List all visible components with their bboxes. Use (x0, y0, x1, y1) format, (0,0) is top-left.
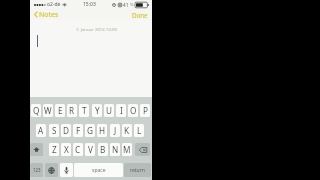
button[interactable]: Z (49, 143, 59, 156)
button[interactable]: Shift (30, 143, 43, 156)
button[interactable]: T (79, 104, 89, 117)
button[interactable]: O (128, 104, 138, 117)
staticText: N (112, 144, 119, 155)
staticText: B (100, 144, 106, 155)
button[interactable]: Y (92, 104, 102, 117)
button[interactable]: J (110, 124, 120, 137)
button[interactable]: E (55, 104, 65, 117)
button[interactable]: W (43, 104, 53, 117)
button[interactable]: Dictate (60, 163, 73, 177)
button[interactable]: A (36, 124, 46, 137)
staticText: P (143, 105, 148, 116)
staticText: F (76, 125, 81, 136)
staticText: 41 (123, 2, 129, 8)
button[interactable]: Q (31, 104, 41, 117)
button[interactable]: G (85, 124, 95, 137)
staticText: return (130, 167, 145, 174)
staticText: Y (95, 105, 100, 116)
button[interactable]: F (73, 124, 83, 137)
staticText: V (88, 144, 93, 155)
staticText: Q (33, 105, 40, 116)
staticText: K (124, 125, 130, 136)
staticText: Notes (39, 10, 59, 19)
staticText: C (75, 144, 81, 155)
staticText: Done (132, 11, 148, 19)
button[interactable]: 123 (30, 163, 43, 177)
button[interactable]: S (49, 124, 59, 137)
button[interactable]: D (61, 124, 71, 137)
staticText: o2-de (47, 1, 61, 8)
staticText: % (130, 2, 134, 8)
staticText: 7. Januar 2014 13:00 (76, 26, 117, 32)
button[interactable]: U (104, 104, 114, 117)
staticText: D (63, 125, 69, 136)
button[interactable]: return (124, 163, 151, 177)
staticText: J (114, 125, 117, 136)
button[interactable]: L (134, 124, 144, 137)
staticText: A (38, 125, 44, 136)
staticText: R (69, 105, 75, 116)
staticText: H (99, 125, 106, 136)
staticText: U (106, 105, 112, 116)
staticText: 15:03 (83, 1, 96, 8)
button[interactable]: P (140, 104, 150, 117)
button[interactable]: Delete (135, 143, 150, 156)
button[interactable]: H (97, 124, 107, 137)
staticText: O (130, 105, 137, 116)
staticText: I (120, 105, 123, 116)
button[interactable]: V (85, 143, 95, 156)
button[interactable]: Notes (30, 9, 63, 20)
staticText: 123 (33, 167, 41, 173)
staticText: G (87, 125, 93, 136)
button[interactable]: N (110, 143, 120, 156)
button[interactable]: R (67, 104, 77, 117)
staticText: T (82, 105, 87, 116)
staticText: S (52, 125, 57, 136)
button[interactable]: C (73, 143, 83, 156)
button[interactable]: I (116, 104, 126, 117)
button[interactable]: M (122, 143, 132, 156)
button[interactable]: space (74, 163, 123, 177)
staticText: E (58, 105, 63, 116)
staticText: L (137, 125, 142, 136)
staticText: space (92, 167, 106, 174)
button[interactable]: Done (128, 10, 152, 20)
staticText: X (64, 144, 69, 155)
button[interactable]: X (61, 143, 71, 156)
staticText: Z (52, 144, 57, 155)
staticText: W (44, 105, 52, 116)
button[interactable]: K (122, 124, 132, 137)
button[interactable]: B (98, 143, 108, 156)
staticText: M (123, 144, 131, 155)
button[interactable]: Switch keyboard (45, 163, 58, 177)
